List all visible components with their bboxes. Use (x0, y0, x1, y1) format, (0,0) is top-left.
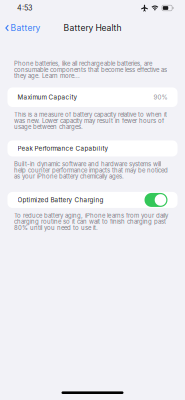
staticText: Built-in dynamic software and hardware s… (14, 160, 168, 180)
button[interactable]: Peak Performance Capability (0, 140, 185, 156)
staticText: 90% (153, 93, 167, 101)
staticText: This is a measure of battery capacity re… (14, 111, 167, 130)
staticText: Battery Health (63, 23, 121, 33)
staticText: Maximum Capacity (17, 93, 77, 101)
staticText: To reduce battery aging, iPhone learns f… (14, 212, 168, 231)
staticText: 4:53 (17, 4, 32, 12)
staticText: Battery (10, 23, 40, 33)
button[interactable]: Maximum Capacity (0, 87, 185, 107)
staticText: Phone batteries, like all rechargeable b… (14, 60, 167, 79)
staticText: Optimized Battery Charging (17, 196, 103, 204)
button[interactable]: Battery (0, 19, 44, 37)
staticText: Peak Performance Capability (17, 145, 108, 152)
button[interactable]: Optimized Battery Charging (144, 193, 167, 207)
